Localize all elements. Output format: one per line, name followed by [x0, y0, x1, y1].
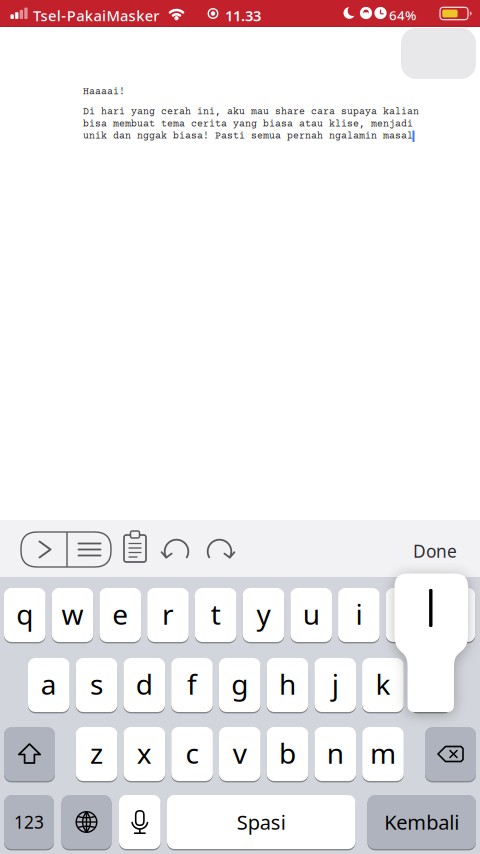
- button[interactable]: n: [314, 727, 356, 781]
- button[interactable]: a: [28, 658, 70, 712]
- staticText: t: [211, 595, 221, 633]
- staticText: c: [186, 734, 199, 772]
- button[interactable]: Done: [413, 539, 457, 562]
- button[interactable]: Return: [367, 795, 476, 849]
- button[interactable]: b: [267, 727, 308, 781]
- staticText: Kembali: [384, 809, 459, 835]
- staticText: 123: [14, 810, 44, 833]
- button[interactable]: p: [434, 588, 475, 642]
- button[interactable]: m: [362, 727, 404, 781]
- button[interactable]: Formatting: [67, 532, 111, 567]
- staticText: y: [256, 595, 270, 633]
- staticText: w: [61, 595, 83, 633]
- button[interactable]: Shift: [4, 727, 55, 781]
- button[interactable]: o: [386, 588, 427, 642]
- staticText: h: [279, 665, 296, 703]
- button[interactable]: k: [362, 658, 404, 712]
- staticText: u: [303, 595, 320, 633]
- staticText: v: [233, 734, 247, 772]
- staticText: f: [187, 665, 197, 703]
- button[interactable]: x: [123, 727, 165, 781]
- staticText: a: [41, 665, 57, 703]
- staticText: Done: [413, 539, 457, 562]
- button[interactable]: i: [338, 588, 380, 642]
- button[interactable]: c: [171, 727, 213, 781]
- staticText: g: [231, 665, 248, 703]
- staticText: d: [136, 665, 153, 703]
- staticText: k: [375, 665, 390, 703]
- button[interactable]: f: [171, 658, 213, 712]
- button[interactable]: Space: [167, 795, 355, 849]
- button[interactable]: Numbers: [4, 795, 54, 849]
- button[interactable]: t: [195, 588, 236, 642]
- staticText: s: [90, 665, 103, 703]
- button[interactable]: w: [52, 588, 93, 642]
- staticText: z: [90, 734, 103, 772]
- button[interactable]: Next keyboard: [61, 795, 111, 849]
- button[interactable]: u: [290, 588, 332, 642]
- button[interactable]: Dictation: [119, 795, 161, 849]
- staticText: Di hari yang cerah ini, aku mau share ca…: [83, 107, 419, 142]
- staticText: e: [112, 595, 128, 633]
- button[interactable]: d: [123, 658, 165, 712]
- button[interactable]: Indent: [21, 532, 67, 567]
- staticText: i: [355, 595, 362, 633]
- button[interactable]: Delete: [425, 727, 476, 781]
- staticText: q: [16, 595, 33, 633]
- staticText: r: [162, 595, 174, 633]
- button[interactable]: y: [243, 588, 284, 642]
- button[interactable]: Paste: [121, 530, 149, 566]
- button[interactable]: g: [219, 658, 260, 712]
- button[interactable]: AssistiveTouch: [401, 28, 476, 79]
- button[interactable]: Redo: [203, 535, 236, 571]
- staticText: Haaaai!: [83, 87, 125, 98]
- staticText: j: [332, 665, 339, 703]
- button[interactable]: v: [219, 727, 261, 781]
- staticText: b: [279, 734, 296, 772]
- staticText: m: [370, 734, 396, 772]
- staticText: n: [327, 734, 344, 772]
- button[interactable]: h: [267, 658, 308, 712]
- staticText: x: [137, 734, 152, 772]
- button[interactable]: j: [314, 658, 356, 712]
- button[interactable]: r: [147, 588, 189, 642]
- button[interactable]: z: [76, 727, 117, 781]
- button[interactable]: e: [99, 588, 141, 642]
- button[interactable]: s: [76, 658, 117, 712]
- button[interactable]: Undo: [160, 535, 193, 571]
- button[interactable]: q: [4, 588, 46, 642]
- staticText: Tsel-PakaiMasker: [33, 6, 159, 25]
- staticText: 64%: [389, 6, 416, 24]
- staticText: 11.33: [225, 6, 261, 25]
- staticText: Spasi: [237, 809, 286, 835]
